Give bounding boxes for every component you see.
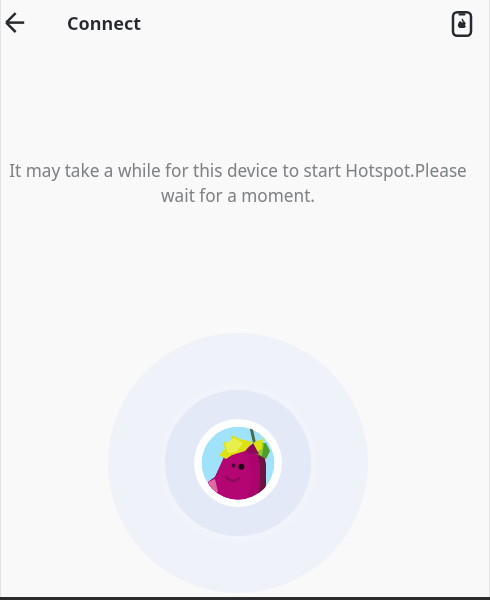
button[interactable]: Connect iPhone — [448, 10, 476, 38]
staticText: Connect — [67, 11, 142, 36]
staticText: It may take a while for this device to s… — [1, 159, 475, 207]
button[interactable]: Back — [0, 0, 46, 47]
